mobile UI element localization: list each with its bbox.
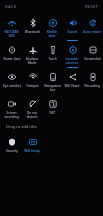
button[interactable]: Do not disturb (22, 96, 42, 119)
button[interactable]: NFC (42, 96, 62, 115)
staticText: Wifi Share (64, 84, 80, 88)
staticText: Eye comfort (3, 84, 21, 88)
button[interactable]: BACK (4, 3, 18, 11)
staticText: RESET (85, 4, 98, 10)
staticText: Wifi Setup (24, 149, 40, 153)
button[interactable]: Wifi Share (62, 69, 82, 88)
button[interactable]: NETGEAR 56N (1, 15, 22, 38)
staticText: Hotspot (26, 84, 39, 88)
button[interactable]: Security (1, 134, 22, 153)
button[interactable]: RESET (84, 3, 99, 11)
button[interactable]: Power Save (1, 42, 22, 61)
staticText: Torch (48, 57, 57, 61)
staticText: Power Save (3, 57, 21, 61)
staticText: NETGEAR 56N (4, 30, 19, 38)
staticText: Security (6, 149, 18, 153)
staticText: Recording (84, 84, 100, 88)
staticText: BACK (5, 4, 17, 10)
button[interactable]: Recording (82, 69, 102, 88)
staticText: Mobile data (43, 30, 61, 38)
staticText: Drag to add tiles (6, 124, 38, 129)
button[interactable]: Screenshot (82, 42, 102, 61)
button[interactable]: Location services (62, 42, 82, 65)
button[interactable]: Wifi Setup (22, 134, 42, 153)
staticText: Do not disturb (23, 111, 41, 119)
button[interactable]: Screen recording (1, 96, 22, 119)
staticText: Bluetooth (25, 30, 40, 34)
staticText: Navigation bar (44, 84, 61, 92)
button[interactable]: Torch (42, 42, 62, 61)
button[interactable]: Navigation bar (42, 69, 62, 92)
staticText: Sound (67, 30, 77, 34)
button[interactable]: Sound (62, 15, 82, 34)
button[interactable]: Eye comfort (1, 69, 22, 88)
staticText: Auto rotate (83, 30, 101, 34)
button[interactable]: Hotspot (22, 69, 42, 88)
button[interactable]: Bluetooth (22, 15, 42, 34)
staticText: Airplane Mode (23, 57, 41, 65)
button[interactable]: Mobile data (42, 15, 62, 38)
staticText: Location services (65, 57, 79, 65)
staticText: Screen recording (4, 111, 19, 119)
button[interactable]: Airplane Mode (22, 42, 42, 65)
staticText: NFC (49, 111, 56, 115)
button[interactable]: Auto rotate (82, 15, 102, 34)
staticText: Screenshot (84, 57, 101, 61)
